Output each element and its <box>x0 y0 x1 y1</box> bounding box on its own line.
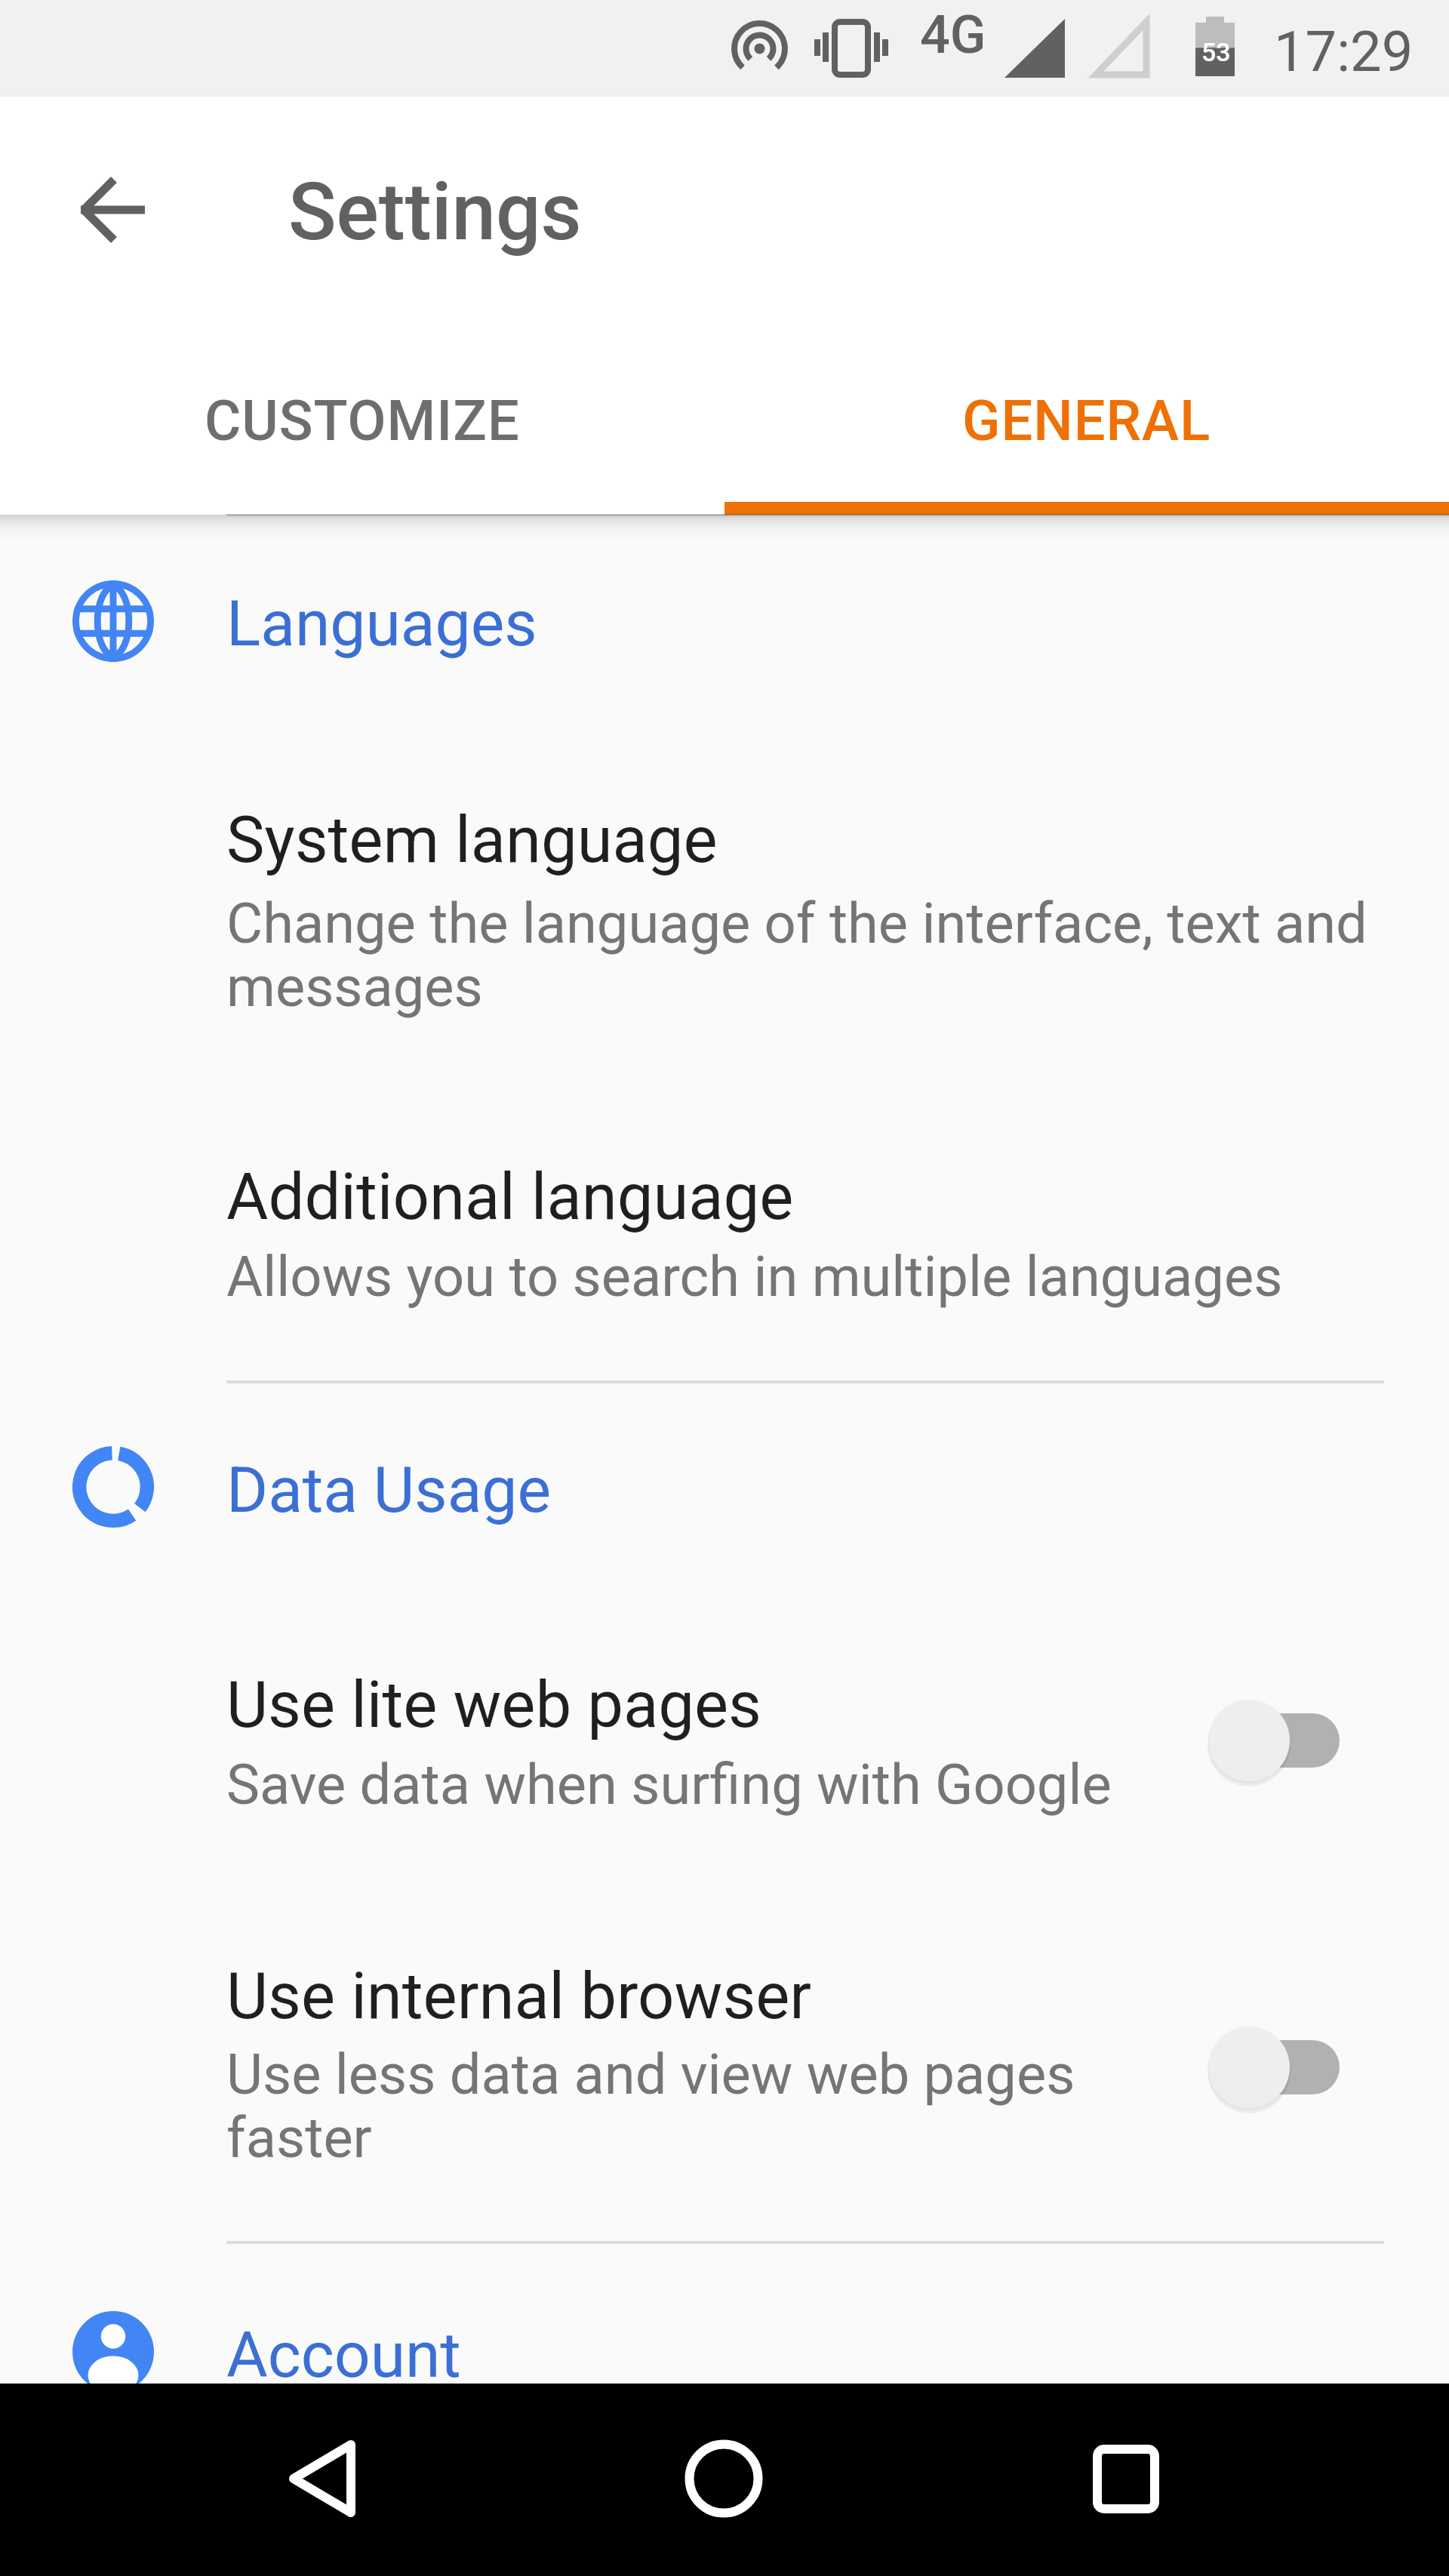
button[interactable]: Toggle Use internal browser <box>1161 1999 1403 2135</box>
staticText: System language <box>226 802 718 878</box>
button[interactable]: GENERAL <box>724 381 1449 515</box>
staticText: Use internal browser <box>226 1959 812 2034</box>
staticText: Change the language of the interface, te… <box>226 891 1404 1020</box>
button[interactable]: Account <box>0 2266 1449 2417</box>
staticText: GENERAL <box>962 388 1211 454</box>
staticText: Data Usage <box>226 1453 552 1527</box>
button[interactable]: Recent apps <box>1035 2384 1217 2576</box>
button[interactable]: Use internal browser <box>0 1959 1449 2140</box>
staticText: Settings <box>288 166 582 259</box>
staticText: 17:29 <box>1274 19 1414 85</box>
button[interactable]: System language <box>0 802 1449 983</box>
staticText: Account <box>226 2318 461 2392</box>
staticText: Additional language <box>226 1159 794 1235</box>
staticText: Use less data and view web pages faster <box>226 2042 1404 2171</box>
button[interactable]: Home <box>633 2384 814 2576</box>
button[interactable]: Languages <box>0 535 1449 686</box>
staticText: 4G <box>920 4 986 66</box>
staticText: Allows you to search in multiple languag… <box>226 1244 1404 1310</box>
button[interactable]: Additional language <box>0 1159 1449 1340</box>
button[interactable]: Use lite web pages <box>0 1667 1449 1848</box>
staticText: Use lite web pages <box>226 1667 761 1743</box>
staticText: Save data when surfing with Google <box>226 1752 1404 1817</box>
staticText: Languages <box>226 586 537 660</box>
button[interactable]: Data Usage <box>0 1401 1449 1552</box>
staticText: CUSTOMIZE <box>205 388 520 454</box>
button[interactable]: Back <box>48 146 177 274</box>
button[interactable]: CUSTOMIZE <box>0 381 724 515</box>
staticText: 53 <box>1201 37 1231 67</box>
button[interactable]: Back <box>232 2384 413 2576</box>
button[interactable]: Toggle Use lite web pages <box>1161 1673 1403 1808</box>
